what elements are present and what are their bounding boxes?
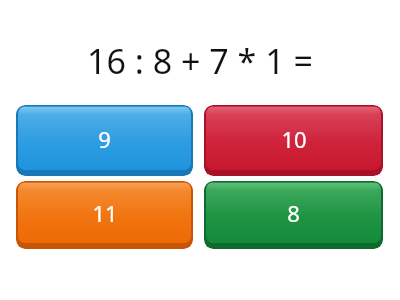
staticText: 8 (287, 198, 300, 228)
staticText: 9 (98, 124, 111, 154)
button[interactable]: 8 (204, 181, 383, 249)
button[interactable]: 11 (16, 181, 193, 249)
staticText: 16 : 8 + 7 * 1 = (12, 38, 388, 84)
staticText: 11 (92, 198, 118, 228)
staticText: 10 (281, 124, 307, 154)
button[interactable]: 9 (16, 105, 193, 176)
button[interactable]: 10 (204, 105, 383, 176)
